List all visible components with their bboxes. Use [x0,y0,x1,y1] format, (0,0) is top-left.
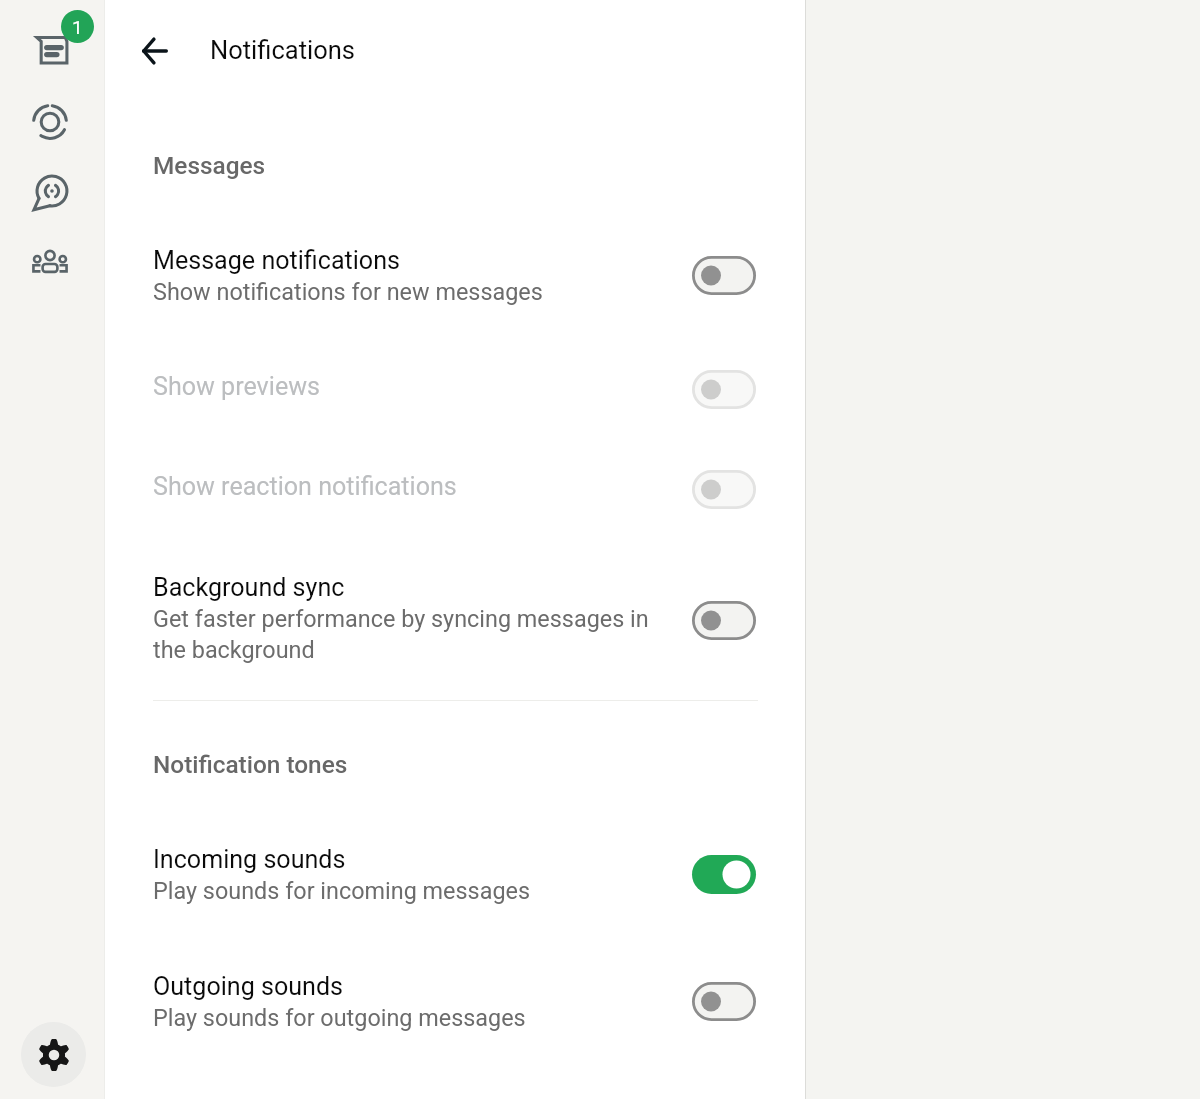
button[interactable] [104,541,806,667]
button[interactable] [104,340,806,440]
staticText: Messages [153,151,266,180]
button[interactable]: Back [132,28,178,74]
button[interactable]: Show reaction notifications, off [692,470,756,509]
staticText: Notification tones [153,750,348,779]
button[interactable] [104,214,806,340]
button[interactable] [104,813,806,939]
staticText: Notifications [210,35,355,65]
button[interactable]: Settings [21,1022,86,1087]
staticText: Play sounds for outgoing messages [153,1004,526,1031]
staticText: 1 [72,16,83,38]
button[interactable]: Status [12,95,92,147]
staticText: Incoming sounds [153,845,346,874]
staticText: Show reaction notifications [153,472,457,501]
button[interactable]: Message notifications, off [692,256,756,295]
staticText: Message notifications [153,246,400,275]
button[interactable] [104,940,806,1066]
staticText: Play sounds for incoming messages [153,877,530,904]
button[interactable]: Chats [12,24,92,76]
staticText: Background sync [153,573,345,602]
staticText: Get faster performance by syncing messag… [153,605,663,664]
button[interactable] [104,440,806,540]
button[interactable]: Outgoing sounds, off [692,982,756,1021]
button[interactable]: Incoming sounds, on [692,855,756,894]
button[interactable]: Background sync, off [692,601,756,640]
button[interactable]: Communities [12,237,92,289]
button[interactable]: Show previews, off [692,370,756,409]
staticText: Show previews [153,372,320,401]
button[interactable]: Channels [12,166,92,218]
staticText: Show notifications for new messages [153,278,543,305]
staticText: Outgoing sounds [153,972,344,1001]
